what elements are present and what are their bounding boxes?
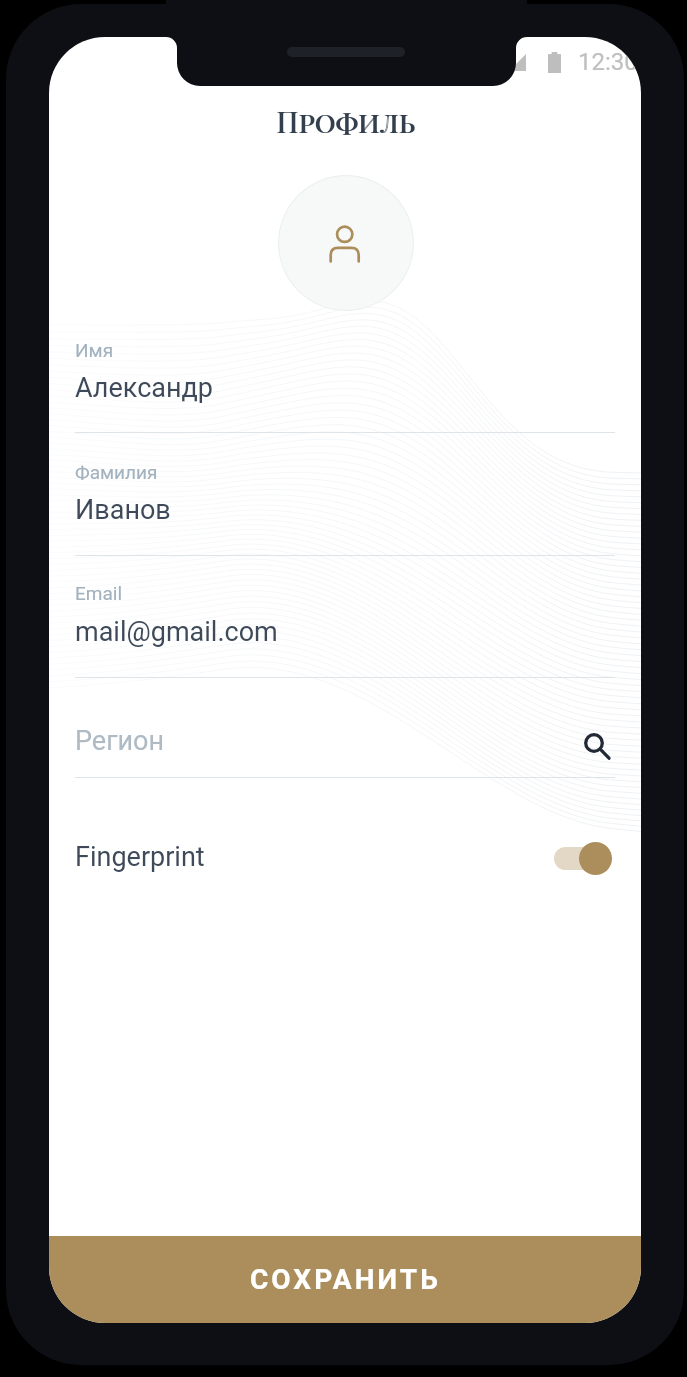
button[interactable]: Search region [576,725,612,761]
button[interactable]: Fingerprint toggle [554,840,612,876]
staticText: Профиль [276,102,415,141]
button[interactable]: Change profile photo [278,175,414,311]
button[interactable]: Имя [75,339,615,363]
staticText: Фамилия [75,461,158,483]
staticText: Профиль [277,102,416,141]
staticText: 12:30 [578,48,638,76]
staticText: Регион [75,725,165,757]
staticText: СОХРАНИТЬ [250,1263,441,1296]
button[interactable]: Регион [75,721,615,761]
staticText: Александр [75,372,214,404]
staticText: mail@gmail.com [75,616,278,648]
staticText: Имя [75,339,114,361]
staticText: Fingerprint [75,841,205,873]
button[interactable]: СОХРАНИТЬ [49,1236,641,1323]
button[interactable]: Email [75,582,615,606]
staticText: Email [75,582,123,604]
button[interactable]: Fingerprint [75,831,615,883]
staticText: Иванов [75,494,171,526]
button[interactable]: Фамилия [75,461,615,485]
